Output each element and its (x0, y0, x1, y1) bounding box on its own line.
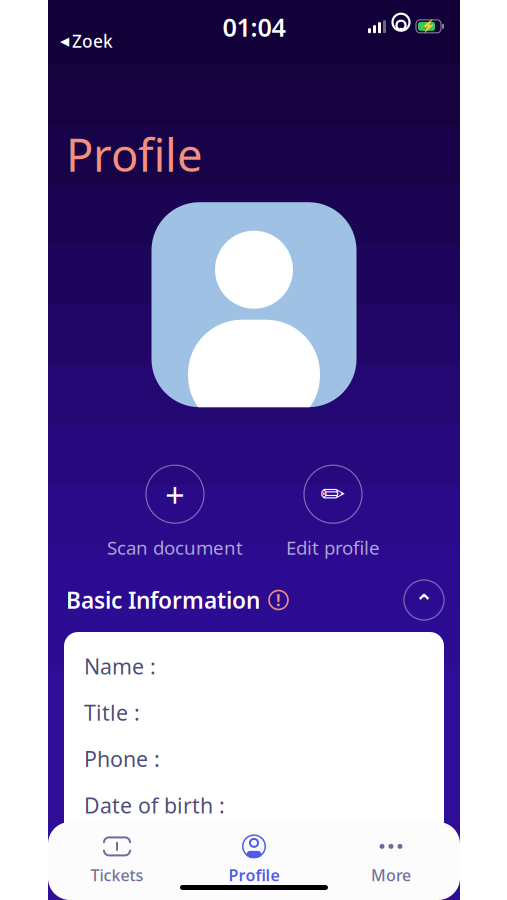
button[interactable]: ◀ (48, 0, 113, 52)
staticText: Zoek (72, 29, 113, 52)
staticText: ✏︎ (320, 478, 345, 511)
staticText: More (371, 864, 411, 886)
button[interactable]: Tickets (48, 836, 185, 884)
staticText: 01:04 (222, 10, 285, 44)
staticText: ⚡ (421, 19, 436, 33)
button[interactable]: More (322, 836, 459, 884)
button[interactable]: ✏︎ (258, 465, 408, 560)
staticText: Profile (66, 124, 203, 184)
staticText: hskegel@gmail.com (196, 837, 398, 866)
staticText: Title : (84, 698, 140, 727)
staticText: Name : (84, 652, 156, 680)
button[interactable]: + (100, 465, 250, 560)
staticText: Date of birth : (84, 791, 225, 819)
staticText: ◀ (60, 34, 69, 48)
staticText: ! (276, 589, 281, 611)
button[interactable]: Profile (185, 836, 322, 884)
staticText: Phone : (84, 745, 160, 773)
staticText: Profile (228, 864, 279, 886)
button[interactable]: Collapse Basic Information (400, 576, 448, 624)
staticText: Email : (84, 837, 152, 866)
staticText: Tickets (90, 864, 143, 886)
staticText: ⌃ (414, 590, 433, 615)
staticText: Basic Information (66, 585, 260, 615)
staticText: Scan document (107, 535, 243, 560)
staticText: + (165, 471, 185, 517)
staticText: Edit profile (286, 535, 380, 560)
